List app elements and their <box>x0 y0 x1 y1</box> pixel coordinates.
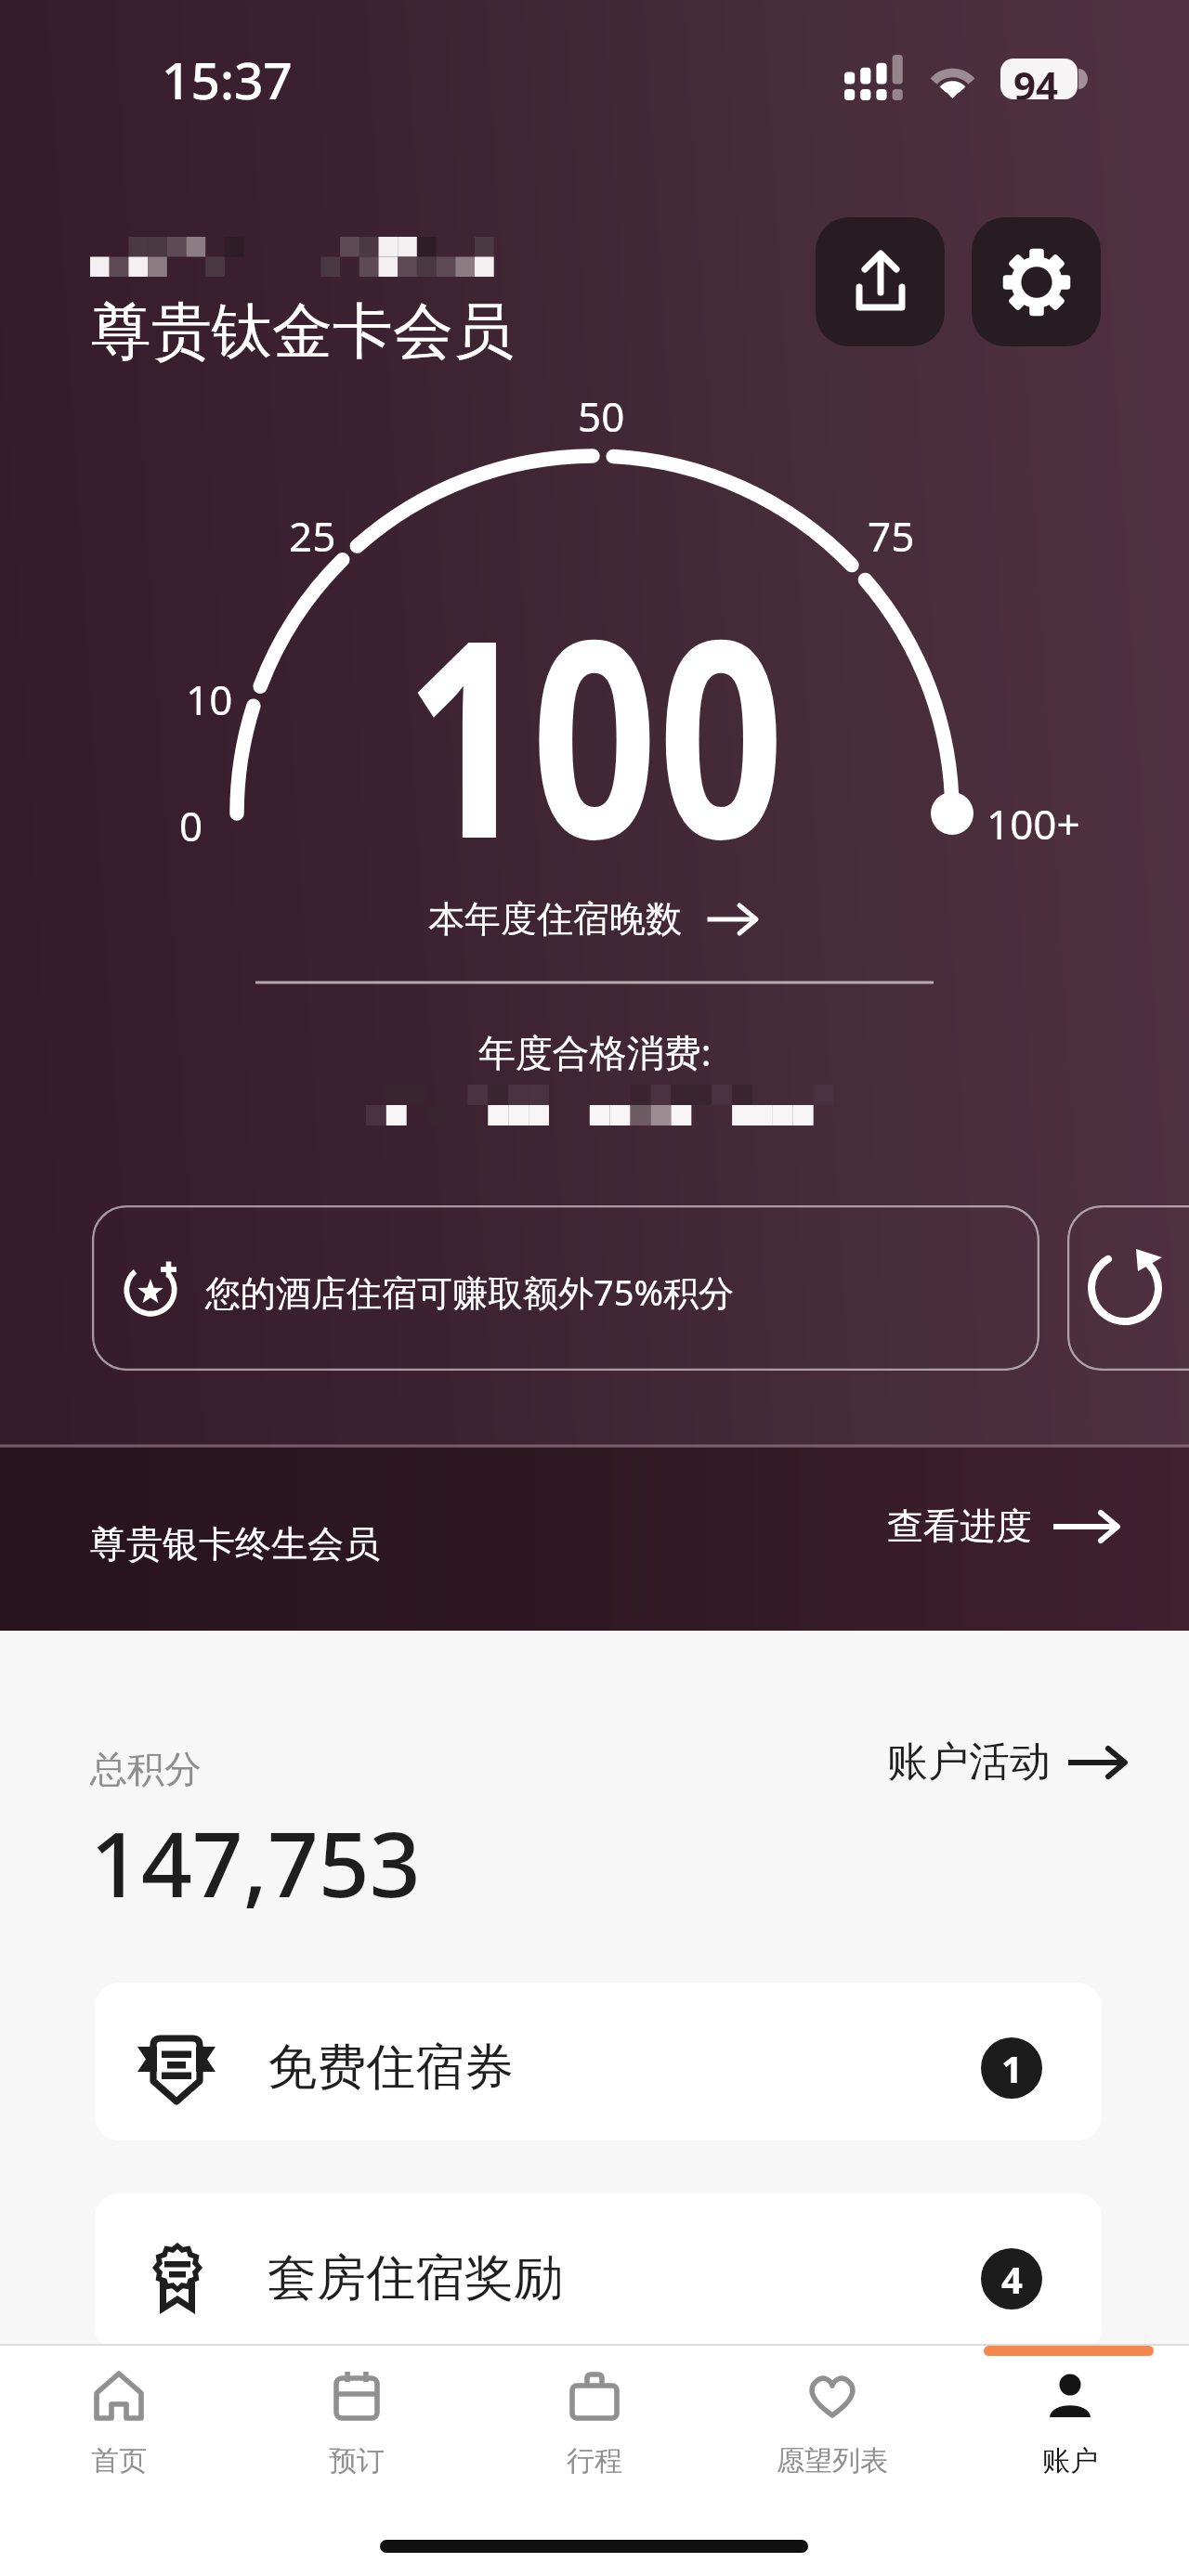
staticText: 4 <box>1001 2254 1023 2304</box>
button[interactable]: Share <box>816 217 945 346</box>
staticText: 75 <box>868 508 915 564</box>
staticText: 15:37 <box>162 45 293 114</box>
staticText: 10 <box>186 671 233 727</box>
staticText: 首页 <box>91 2443 147 2478</box>
button[interactable]: 套房住宿奖励 <box>95 2193 1102 2351</box>
staticText: 免费住宿券 <box>268 2036 514 2099</box>
staticText: 查看进度 <box>887 1503 1032 1549</box>
button[interactable]: 愿望列表 <box>713 2345 951 2517</box>
staticText: 尊贵银卡终生会员 <box>90 1521 380 1567</box>
staticText: 总积分 <box>90 1746 202 1792</box>
staticText: 50 <box>578 388 625 444</box>
staticText: 25 <box>289 508 336 564</box>
button[interactable]: Settings <box>972 217 1101 346</box>
button[interactable]: 查看进度 <box>887 1503 1119 1549</box>
staticText: 100 <box>112 546 1077 917</box>
button[interactable]: 账户 <box>951 2345 1189 2517</box>
button[interactable]: Refresh <box>1067 1205 1189 1371</box>
staticText: 尊贵钛金卡会员 <box>91 293 514 370</box>
staticText: 账户 <box>1042 2443 1098 2478</box>
staticText: 年度合格消费: <box>0 1026 1189 1077</box>
button[interactable]: 预订 <box>238 2345 476 2517</box>
staticText: 94 <box>1013 59 1059 99</box>
button[interactable]: 免费住宿券 <box>95 1983 1102 2140</box>
staticText: 您的酒店住宿可赚取额外75%积分 <box>205 1268 735 1316</box>
button[interactable]: 您的酒店住宿可赚取额外75%积分 <box>92 1205 1039 1371</box>
button[interactable]: 首页 <box>0 2345 238 2517</box>
button[interactable]: 本年度住宿晚数 <box>428 896 758 942</box>
staticText: 本年度住宿晚数 <box>428 896 682 942</box>
staticText: 100+ <box>986 796 1080 852</box>
staticText: 套房住宿奖励 <box>268 2247 563 2309</box>
staticText: 预订 <box>329 2443 385 2478</box>
button[interactable]: 行程 <box>476 2345 713 2517</box>
staticText: 行程 <box>567 2443 622 2478</box>
staticText: 0 <box>179 798 203 853</box>
button[interactable]: 账户活动 <box>887 1737 1127 1788</box>
staticText: 愿望列表 <box>777 2443 888 2478</box>
staticText: 1 <box>1001 2043 1023 2093</box>
staticText: 账户活动 <box>887 1737 1051 1788</box>
staticText: 147,753 <box>90 1802 421 1923</box>
